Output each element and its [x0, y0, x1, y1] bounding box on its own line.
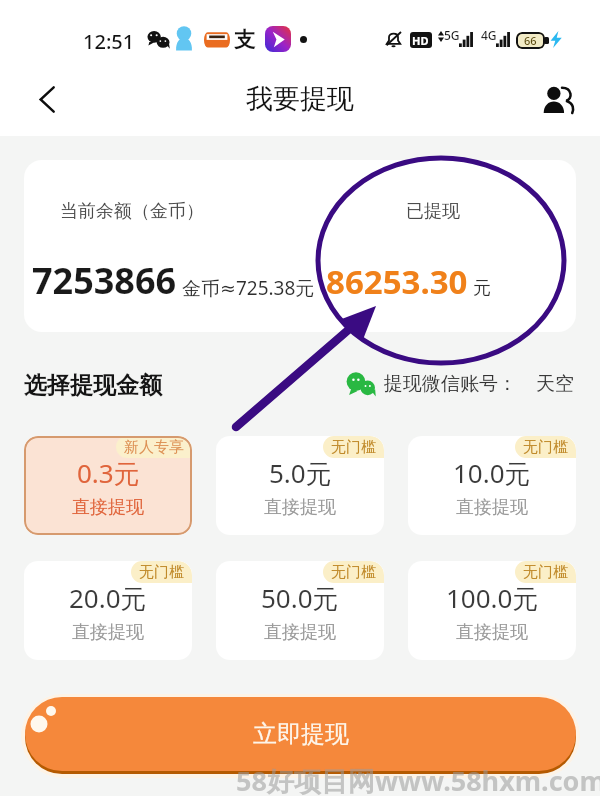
staticText: 5G: [444, 27, 460, 43]
staticText: 10.0元: [453, 455, 531, 491]
staticText: 选择提现金额: [24, 371, 162, 400]
staticText: 0.3元: [77, 455, 140, 491]
staticText: 提现微信账号：: [384, 372, 517, 396]
button[interactable]: 无门槛: [216, 561, 384, 660]
staticText: 直接提现: [72, 496, 144, 519]
staticText: 我要提现: [246, 82, 354, 116]
staticText: 100.0元: [446, 580, 539, 616]
staticText: 直接提现: [456, 496, 528, 519]
staticText: 12:51: [83, 28, 135, 55]
button[interactable]: 无门槛: [216, 436, 384, 535]
staticText: 支: [234, 27, 255, 53]
staticText: 7253866: [32, 256, 177, 305]
staticText: HD: [412, 33, 429, 48]
staticText: 20.0元: [69, 580, 147, 616]
button[interactable]: Back: [25, 77, 69, 121]
staticText: 当前余额（金币）: [60, 200, 204, 223]
button[interactable]: 无门槛: [408, 561, 576, 660]
button[interactable]: 立即提现: [25, 697, 576, 771]
staticText: 66: [524, 33, 537, 48]
staticText: 无门槛: [523, 563, 568, 582]
staticText: 元: [473, 277, 491, 300]
staticText: 已提现: [406, 200, 460, 223]
staticText: 无门槛: [331, 563, 376, 582]
staticText: 直接提现: [264, 621, 336, 644]
staticText: 直接提现: [456, 621, 528, 644]
staticText: 无门槛: [331, 438, 376, 457]
staticText: 直接提现: [72, 621, 144, 644]
staticText: 直接提现: [264, 496, 336, 519]
button[interactable]: 新人专享: [24, 436, 192, 535]
staticText: 天空: [536, 372, 574, 396]
staticText: 金币≈725.38元: [182, 275, 315, 301]
staticText: 新人专享: [124, 438, 184, 457]
staticText: 50.0元: [261, 580, 339, 616]
staticText: 立即提现: [253, 719, 349, 749]
staticText: 58好项目网www.58hxm.com: [236, 762, 600, 796]
button[interactable]: Friends: [537, 76, 583, 122]
button[interactable]: 无门槛: [408, 436, 576, 535]
staticText: 无门槛: [523, 438, 568, 457]
staticText: 86253.30: [326, 259, 468, 304]
staticText: 5.0元: [269, 455, 332, 491]
button[interactable]: 无门槛: [24, 561, 192, 660]
staticText: 4G: [481, 27, 497, 43]
staticText: 无门槛: [139, 563, 184, 582]
